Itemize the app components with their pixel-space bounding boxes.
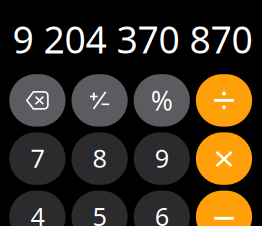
button[interactable]: Minus (196, 191, 252, 226)
button[interactable]: Percent (134, 74, 190, 127)
button[interactable]: Toggle sign (71, 74, 128, 127)
staticText: 7 (30, 141, 44, 175)
button[interactable]: 8 (71, 132, 128, 185)
button[interactable]: 6 (134, 191, 190, 226)
staticText: 8 (93, 141, 107, 175)
button[interactable]: 7 (9, 132, 65, 185)
button[interactable]: 9 (134, 132, 190, 185)
button[interactable]: Divide (196, 74, 252, 127)
staticText: 9 (155, 141, 169, 175)
staticText: 5 (93, 199, 107, 226)
button[interactable]: Delete (9, 74, 65, 127)
button[interactable]: 4 (9, 191, 65, 226)
button[interactable]: Multiply (196, 132, 252, 185)
button[interactable]: 5 (71, 191, 128, 226)
staticText: 6 (155, 199, 169, 226)
staticText: % (151, 83, 173, 118)
staticText: 4 (30, 199, 44, 226)
staticText: 9 204 370 870 (12, 14, 252, 64)
